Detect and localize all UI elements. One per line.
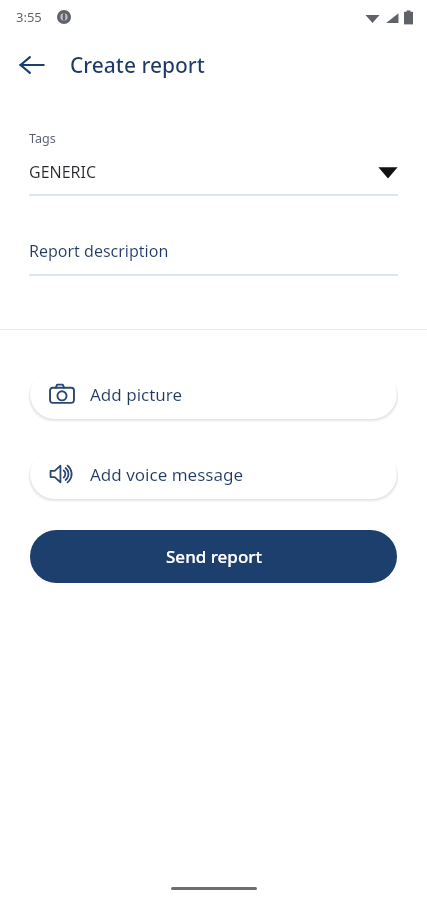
staticText: Send report	[166, 545, 262, 568]
staticText: Add voice message	[90, 463, 244, 486]
button[interactable]: Back	[8, 41, 56, 89]
button[interactable]: Report description	[29, 240, 398, 262]
staticText: 3:55	[16, 8, 42, 26]
staticText: GENERIC	[29, 161, 378, 183]
staticText: Create report	[70, 51, 205, 80]
staticText: Tags	[29, 130, 56, 147]
button[interactable]: Send report	[30, 530, 397, 583]
staticText: Report description	[29, 240, 169, 262]
button[interactable]: GENERIC	[29, 161, 398, 183]
button[interactable]: Add voice message	[30, 449, 397, 499]
button[interactable]: Add picture	[30, 369, 397, 419]
staticText: Add picture	[90, 383, 183, 406]
